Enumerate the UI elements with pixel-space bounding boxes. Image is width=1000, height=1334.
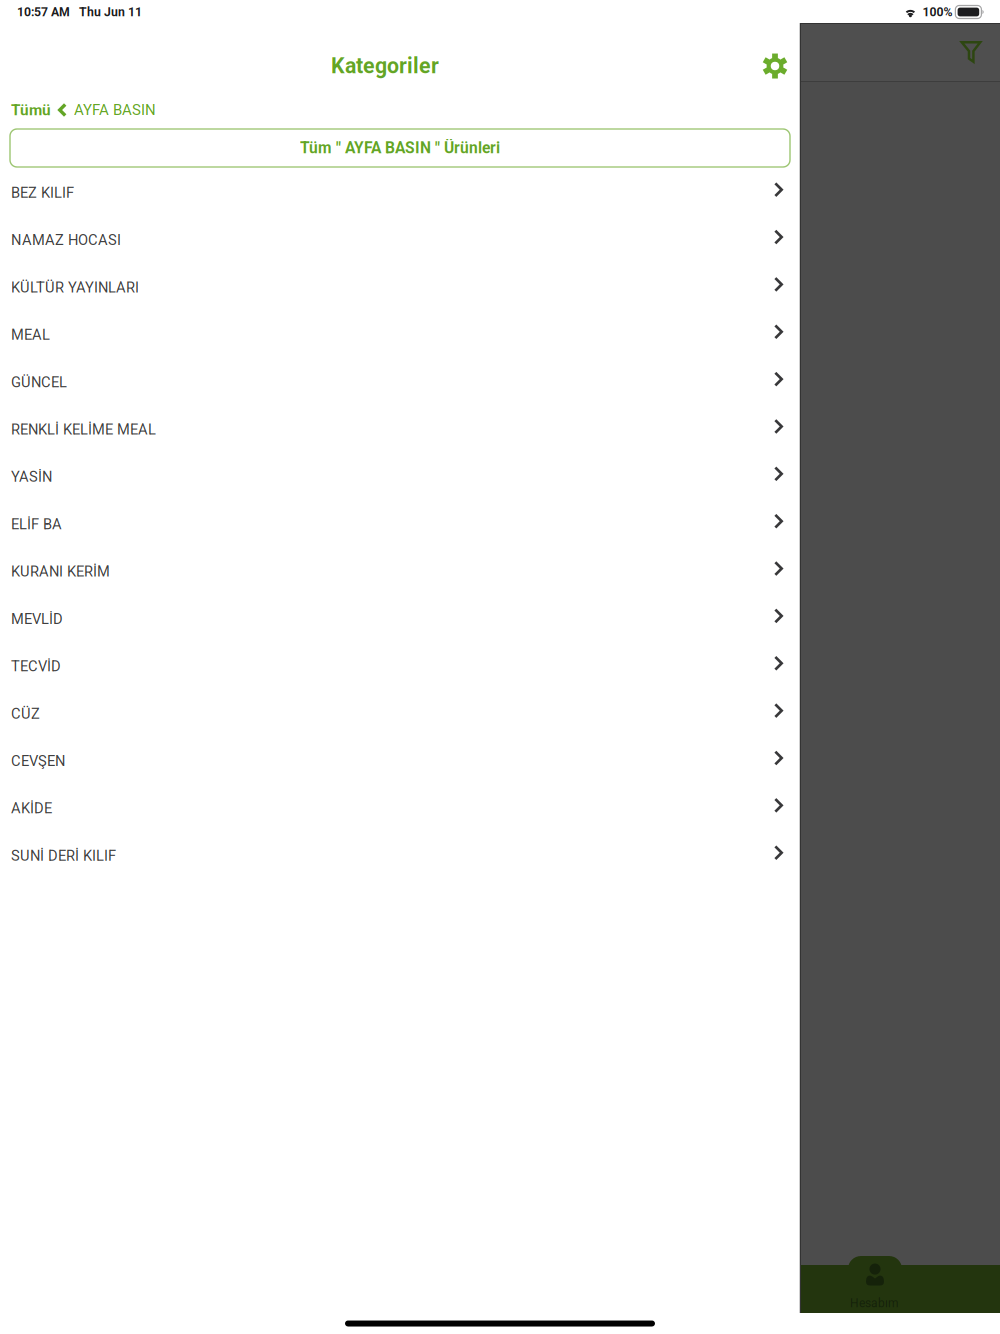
staticText: KURANI KERİM <box>11 563 110 580</box>
button[interactable]: MEVLİD <box>0 595 800 643</box>
button[interactable]: MEAL <box>0 311 800 358</box>
staticText: RENKLİ KELİME MEAL <box>11 421 156 438</box>
button[interactable]: NAMAZ HOCASI <box>0 216 800 264</box>
staticText: CEVŞEN <box>11 752 65 770</box>
staticText: Thu Jun 11 <box>79 5 142 19</box>
staticText: MEAL <box>11 326 50 343</box>
staticText: GÜNCEL <box>11 373 67 391</box>
staticText: Tüm " AYFA BASIN " Ürünleri <box>300 139 500 157</box>
staticText: BEZ KILIF <box>11 184 74 201</box>
staticText: KÜLTÜR YAYINLARI <box>11 279 139 296</box>
button[interactable]: RENKLİ KELİME MEAL <box>0 406 800 453</box>
staticText: MEVLİD <box>11 610 63 627</box>
staticText: SUNİ DERİ KILIF <box>11 847 116 864</box>
staticText: Kategoriler <box>331 53 439 78</box>
staticText: 10:57 AM <box>17 5 70 19</box>
button[interactable]: KÜLTÜR YAYINLARI <box>0 264 800 311</box>
button[interactable]: TECVİD <box>0 643 800 690</box>
button[interactable]: Filter <box>951 32 991 72</box>
button[interactable]: YASİN <box>0 453 800 501</box>
button[interactable]: Tüm " AYFA BASIN " Ürünleri <box>10 129 790 167</box>
button[interactable]: Hesabım <box>801 1255 1000 1313</box>
button[interactable]: Tümü <box>11 97 51 123</box>
button[interactable]: AKİDE <box>0 785 800 832</box>
staticText: Hesabım <box>850 1296 899 1310</box>
staticText: Tümü <box>11 101 51 119</box>
button[interactable]: ELİF BA <box>0 500 800 548</box>
staticText: AYFA BASIN <box>74 101 156 119</box>
button[interactable]: BEZ KILIF <box>0 169 800 216</box>
button[interactable]: SUNİ DERİ KILIF <box>0 832 800 879</box>
button[interactable]: GÜNCEL <box>0 358 800 406</box>
button[interactable]: CÜZ <box>0 690 800 737</box>
button[interactable]: Settings <box>753 44 797 88</box>
staticText: AKİDE <box>11 800 52 817</box>
staticText: CÜZ <box>11 705 40 722</box>
button[interactable]: CEVŞEN <box>0 737 800 785</box>
staticText: YASİN <box>11 468 52 485</box>
staticText: ELİF BA <box>11 516 62 533</box>
staticText: TECVİD <box>11 658 61 675</box>
staticText: 100% <box>922 5 952 19</box>
staticText: NAMAZ HOCASI <box>11 231 121 249</box>
button[interactable]: KURANI KERİM <box>0 548 800 595</box>
